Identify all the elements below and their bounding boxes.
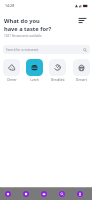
button[interactable]: Search	[53, 187, 71, 200]
button[interactable]: Dinner	[3, 59, 20, 82]
button[interactable]: Favorites	[17, 187, 35, 200]
staticText: Dinner	[7, 78, 17, 82]
staticText: What do you	[4, 17, 40, 25]
staticText: 14:28	[5, 3, 15, 8]
staticText: Dessert	[76, 78, 87, 82]
button[interactable]: Lunch	[26, 59, 43, 82]
staticText: have a taste for?	[4, 25, 52, 33]
button[interactable]: Search for a restaurant	[3, 45, 90, 54]
button[interactable]: Breakfast	[49, 59, 66, 82]
button[interactable]: Dessert	[73, 59, 90, 82]
button[interactable]: Cart	[35, 187, 53, 200]
staticText: Search for a restaurant	[6, 48, 39, 52]
staticText: 1041 Restaurants available	[4, 34, 42, 38]
staticText: Lunch	[30, 78, 39, 82]
button[interactable]: Home	[0, 187, 17, 200]
staticText: Breakfast	[51, 78, 65, 82]
button[interactable]: Profile	[71, 187, 89, 200]
button[interactable]: Menu	[76, 14, 88, 26]
